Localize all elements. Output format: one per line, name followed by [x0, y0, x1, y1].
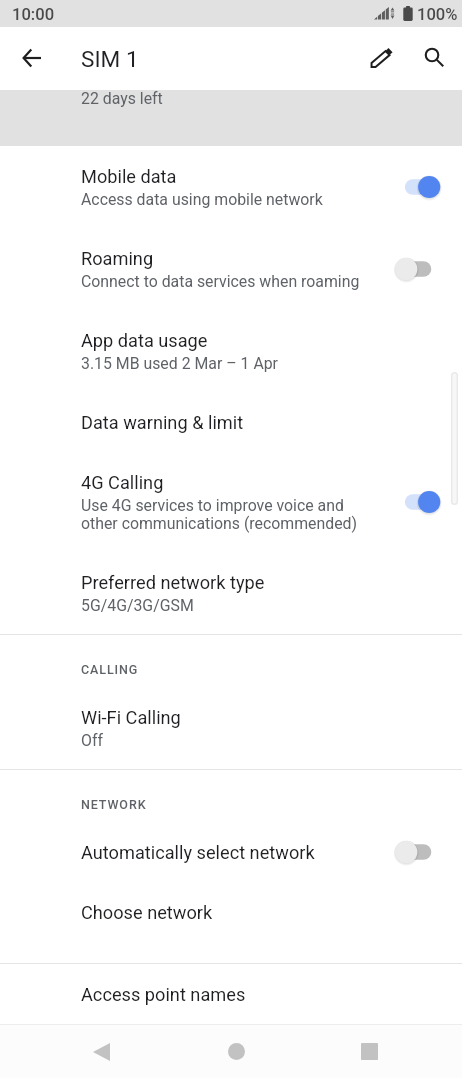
button[interactable]: Choose network: [0, 882, 462, 963]
staticText: Wi-Fi Calling: [81, 707, 181, 728]
button[interactable]: Preferred network type: [0, 552, 462, 634]
button[interactable]: Home: [199, 1025, 274, 1078]
staticText: 22 days left: [81, 89, 163, 107]
button[interactable]: Recent apps: [332, 1025, 407, 1078]
staticText: 10:00: [12, 5, 55, 24]
staticText: Roaming: [81, 248, 154, 269]
button[interactable]: Mobile data: [0, 146, 462, 228]
staticText: Choose network: [81, 902, 213, 923]
button[interactable]: App data usage: [0, 310, 462, 392]
staticText: Preferred network type: [81, 572, 265, 593]
button[interactable]: Roaming: [0, 228, 462, 310]
staticText: 4G Calling: [81, 472, 164, 493]
staticText: 3.15 MB used 2 Mar – 1 Apr: [81, 354, 278, 372]
button[interactable]: 4G Calling: [395, 488, 441, 516]
staticText: Connect to data services when roaming: [81, 272, 360, 290]
staticText: Automatically select network: [81, 842, 315, 863]
button[interactable]: Search: [410, 33, 458, 81]
button[interactable]: Wi-Fi Calling: [0, 687, 462, 769]
staticText: 100%: [417, 5, 458, 24]
staticText: App data usage: [81, 330, 208, 351]
button[interactable]: Mobile data: [395, 173, 441, 201]
staticText: Access point names: [81, 984, 246, 1005]
button[interactable]: Roaming: [395, 255, 441, 283]
staticText: SIM 1: [81, 46, 139, 72]
button[interactable]: Data warning & limit: [0, 392, 462, 452]
staticText: Mobile data: [81, 166, 177, 187]
staticText: 5G/4G/3G/GSM: [81, 596, 194, 614]
button[interactable]: Automatically select network: [0, 822, 462, 882]
button[interactable]: Automatically select network: [395, 838, 441, 866]
staticText: Data warning & limit: [81, 412, 244, 433]
button[interactable]: Access point names: [0, 964, 462, 1024]
button[interactable]: Navigate up: [7, 33, 56, 82]
staticText: NETWORK: [81, 797, 147, 812]
button[interactable]: 4G Calling: [0, 452, 462, 552]
staticText: CALLING: [81, 662, 139, 677]
staticText: Use 4G services to improve voice and oth…: [81, 496, 358, 532]
button[interactable]: Back: [64, 1025, 139, 1078]
staticText: Access data using mobile network: [81, 190, 323, 208]
button[interactable]: Edit: [357, 31, 405, 79]
staticText: Off: [81, 731, 103, 749]
